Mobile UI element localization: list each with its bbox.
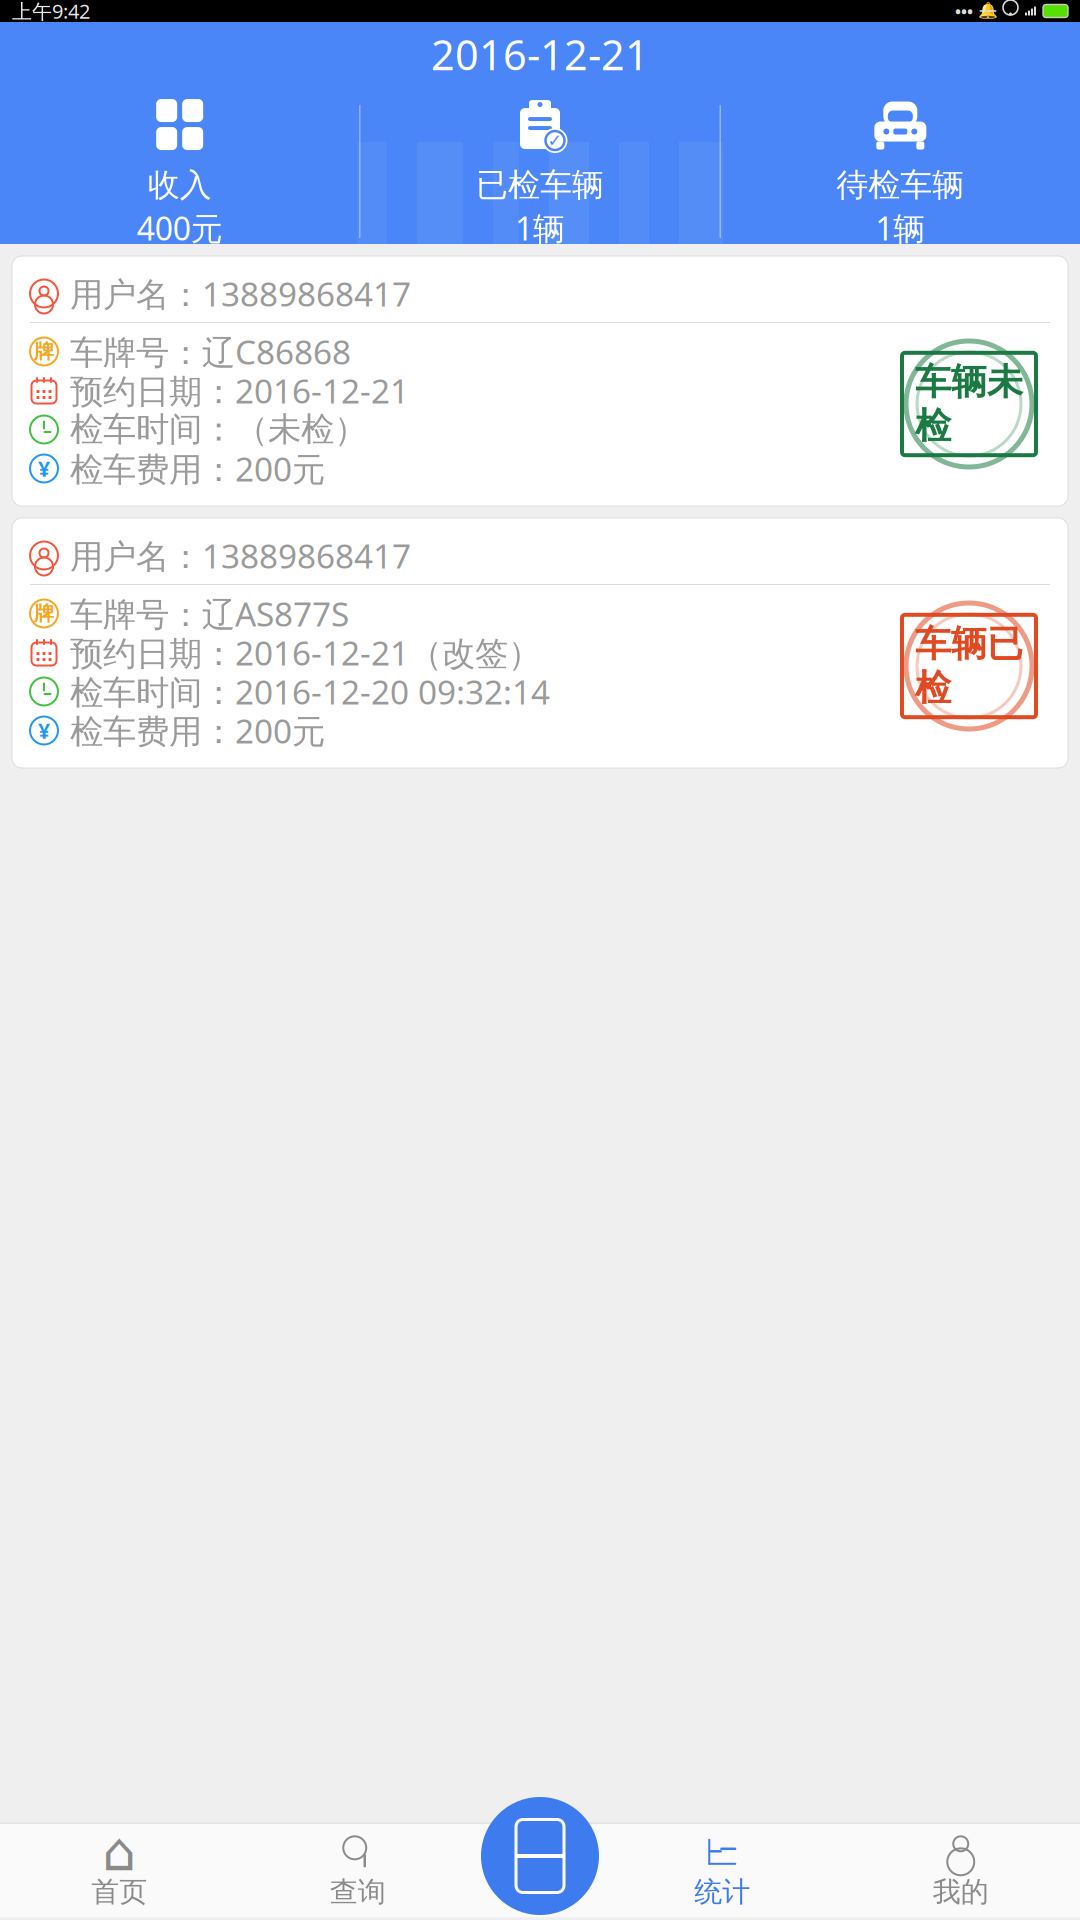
staticText: 预约日期：2016-12-21 — [70, 368, 409, 413]
staticText: ¥ — [38, 716, 50, 745]
button[interactable]: ⌂ — [0, 1824, 238, 1917]
staticText: 用户名：13889868417 — [70, 533, 411, 578]
staticText: 牌 — [34, 339, 54, 364]
button[interactable]: 查询 — [238, 1824, 477, 1917]
staticText: 1辆 — [875, 207, 925, 249]
staticText: 2016-12-21 — [431, 27, 649, 82]
staticText: ••• — [955, 0, 973, 22]
staticText: 车辆未检 — [915, 360, 1023, 448]
staticText: 检车费用：200元 — [70, 446, 325, 491]
staticText: 检车时间：（未检） — [70, 409, 367, 450]
button[interactable]: 用户名：13889868417 — [12, 518, 1068, 768]
staticText: ⌂ — [102, 1821, 136, 1882]
button[interactable]: 收入 — [0, 89, 359, 253]
staticText: 收入 — [148, 165, 212, 205]
staticText: 待检车辆 — [836, 165, 964, 205]
staticText: 我的 — [933, 1875, 989, 1909]
staticText: 1辆 — [515, 207, 565, 249]
button[interactable]: 我的 — [841, 1824, 1080, 1917]
button[interactable]: 用户名：13889868417 — [12, 256, 1068, 506]
button[interactable]: 待检车辆 — [721, 89, 1080, 253]
staticText: ¥ — [38, 454, 50, 483]
staticText: 统计 — [694, 1875, 750, 1909]
staticText: 检车时间：2016-12-20 09:32:14 — [70, 669, 550, 714]
staticText: ✓ — [547, 131, 562, 150]
staticText: 400元 — [137, 207, 223, 249]
staticText: 检车费用：200元 — [70, 708, 325, 753]
staticText: 首页 — [91, 1875, 147, 1909]
button[interactable]: ✓ — [360, 89, 720, 253]
button[interactable]: 统计 — [603, 1824, 841, 1917]
staticText: 牌 — [34, 601, 54, 626]
staticText: 车辆已检 — [915, 622, 1023, 710]
staticText: 用户名：13889868417 — [70, 271, 411, 316]
staticText: 查询 — [330, 1875, 386, 1909]
staticText: 已检车辆 — [476, 165, 604, 205]
staticText: 🔔 — [978, 2, 998, 20]
staticText: 上午9:42 — [12, 0, 90, 24]
button[interactable]: 扫描 — [481, 1797, 599, 1915]
staticText: 预约日期：2016-12-21（改签） — [70, 630, 541, 675]
staticText: 车牌号：辽C86868 — [70, 329, 351, 374]
staticText: 车牌号：辽AS877S — [70, 591, 349, 636]
